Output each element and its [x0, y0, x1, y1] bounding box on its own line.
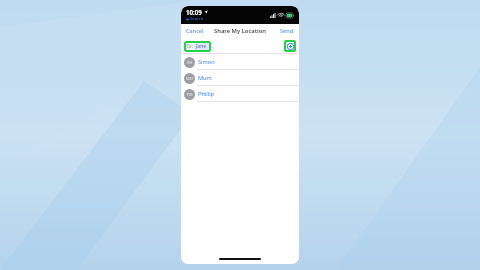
button[interactable]: Send [279, 26, 295, 36]
button[interactable]: MU [181, 70, 299, 86]
staticText: PH [187, 92, 193, 97]
staticText: Mum [198, 74, 212, 82]
button[interactable]: Cancel [185, 26, 205, 36]
staticText: Send [280, 27, 294, 35]
staticText: Search [190, 16, 204, 22]
staticText: SH [187, 60, 193, 65]
staticText: Phillip [198, 90, 215, 98]
button[interactable]: Add contact [284, 40, 296, 52]
staticText: To: [186, 43, 193, 50]
staticText: Simon [198, 58, 215, 66]
staticText: 10:09 [186, 8, 202, 16]
staticText: Jane [196, 43, 207, 50]
button[interactable]: PH [181, 86, 299, 102]
button[interactable]: To: [184, 41, 211, 52]
staticText: Share My Location [214, 27, 266, 35]
staticText: MU [186, 76, 193, 81]
staticText: Cancel [186, 27, 204, 35]
button[interactable]: SH [181, 54, 299, 70]
